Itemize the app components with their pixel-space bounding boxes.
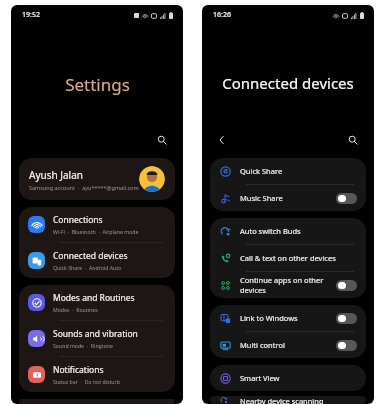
staticText: Status bar · Do not disturb bbox=[53, 378, 120, 385]
button[interactable]: Toggle bbox=[336, 193, 357, 204]
button[interactable]: Search bbox=[344, 131, 362, 149]
button[interactable]: Search settings bbox=[153, 131, 171, 149]
button[interactable]: Toggle bbox=[336, 313, 357, 324]
button[interactable]: Call & text on other devices bbox=[210, 245, 366, 271]
staticText: Settings bbox=[65, 73, 130, 96]
staticText: Modes · Routines bbox=[53, 306, 98, 313]
button[interactable] bbox=[139, 166, 165, 192]
staticText: Modes and Routines bbox=[53, 292, 135, 304]
staticText: Multi control bbox=[240, 340, 332, 350]
button[interactable]: Sounds and vibration bbox=[19, 321, 175, 356]
button[interactable]: Connected devices bbox=[19, 243, 175, 278]
button[interactable]: Notifications bbox=[19, 357, 175, 392]
button[interactable]: Link to Windows bbox=[210, 305, 366, 331]
button[interactable]: Auto switch Buds bbox=[210, 218, 366, 244]
staticText: Connected devices bbox=[53, 250, 128, 262]
staticText: 16:26 bbox=[213, 10, 231, 20]
button[interactable]: Quick Share bbox=[210, 158, 366, 184]
staticText: Connected devices bbox=[222, 73, 354, 93]
button[interactable]: Modes and Routines bbox=[19, 285, 175, 320]
staticText: Connections bbox=[53, 214, 103, 226]
staticText: Sounds and vibration bbox=[53, 328, 138, 340]
staticText: Link to Windows bbox=[240, 313, 332, 323]
button[interactable]: Connections bbox=[19, 207, 175, 242]
button[interactable]: Music Share bbox=[210, 185, 366, 211]
staticText: Wi-Fi · Bluetooth · Airplane mode bbox=[53, 228, 139, 235]
staticText: Auto switch Buds bbox=[240, 226, 357, 236]
button[interactable]: Back bbox=[213, 131, 231, 149]
button[interactable]: Ayush Jalan bbox=[19, 158, 175, 200]
button[interactable]: Continue apps on other devices bbox=[210, 272, 366, 298]
staticText: Notifications bbox=[53, 364, 104, 376]
button[interactable]: Multi control bbox=[210, 332, 366, 358]
staticText: Music Share bbox=[240, 193, 332, 203]
staticText: Samsung account · ayu*****@gmail.com bbox=[29, 184, 139, 191]
staticText: Quick Share bbox=[240, 166, 357, 176]
staticText: Call & text on other devices bbox=[240, 253, 357, 263]
staticText: 19:52 bbox=[22, 10, 40, 20]
button[interactable]: Smart View bbox=[210, 365, 366, 391]
staticText: Nearby device scanning bbox=[240, 396, 357, 404]
staticText: Quick Share · Android Auto bbox=[53, 264, 122, 271]
staticText: Sound mode · Ringtone bbox=[53, 342, 113, 349]
staticText: Ayush Jalan bbox=[29, 168, 83, 182]
button[interactable]: Toggle bbox=[336, 280, 357, 291]
button[interactable]: Toggle bbox=[336, 340, 357, 351]
button[interactable]: Nearby device scanning bbox=[210, 396, 366, 404]
staticText: Smart View bbox=[240, 373, 357, 383]
staticText: Continue apps on other devices bbox=[240, 275, 332, 295]
